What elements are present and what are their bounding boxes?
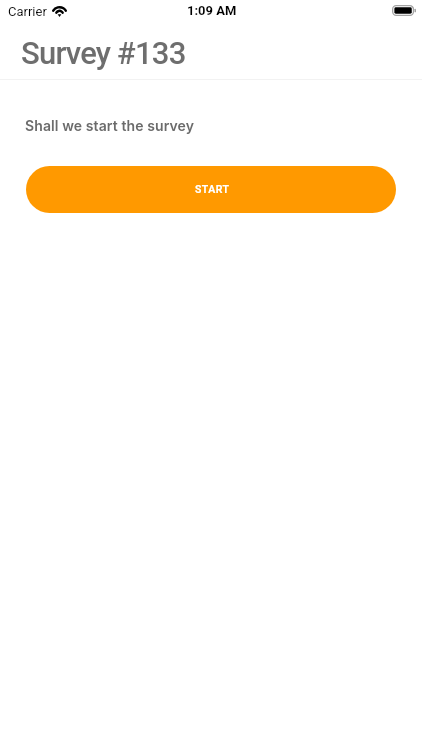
other: Battery full [392,5,417,16]
button[interactable]: START [26,166,396,213]
staticText: START [195,183,230,195]
staticText: Shall we start the survey [25,117,195,134]
staticText: 1:09 AM [187,3,237,18]
staticText: Carrier [8,4,47,19]
other: Wi-Fi signal [52,6,67,17]
staticText: Survey #133 [21,35,186,71]
